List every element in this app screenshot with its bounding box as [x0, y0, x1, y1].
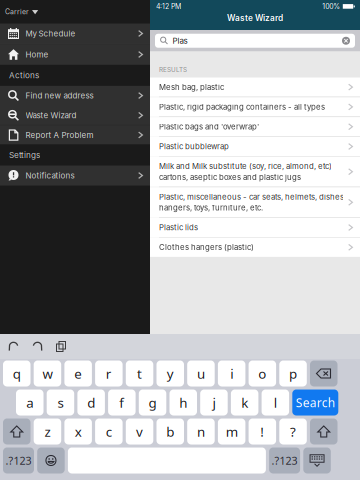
staticText: u: [197, 365, 205, 382]
button[interactable]: Shift: [310, 418, 337, 444]
button[interactable]: y: [156, 360, 184, 386]
staticText: x: [75, 423, 82, 440]
button[interactable]: i: [218, 360, 245, 386]
button[interactable]: m: [218, 418, 245, 444]
button[interactable]: r: [95, 360, 123, 386]
button[interactable]: Redo: [32, 341, 43, 352]
staticText: r: [106, 365, 112, 382]
staticText: Home: [25, 50, 48, 59]
button[interactable]: Notifications: [0, 165, 150, 185]
staticText: b: [166, 423, 174, 440]
staticText: Find new address: [25, 91, 93, 100]
staticText: z: [44, 423, 50, 440]
button[interactable]: u: [187, 360, 215, 386]
button[interactable]: Emoji: [37, 447, 65, 473]
button[interactable]: Waste Wizard: [0, 106, 150, 125]
staticText: Plastic, rigid packaging containers - al…: [159, 102, 325, 112]
button[interactable]: Plastic bubblewrap: [150, 137, 360, 156]
button[interactable]: n: [187, 418, 215, 444]
staticText: q: [13, 365, 21, 382]
button[interactable]: ?: [279, 418, 307, 444]
button[interactable]: Search: [292, 389, 338, 415]
button[interactable]: Mesh bag, plastic: [150, 77, 360, 97]
staticText: s: [57, 394, 63, 411]
button[interactable]: d: [77, 389, 105, 415]
staticText: ?: [290, 423, 296, 440]
button[interactable]: Paste: [56, 341, 67, 352]
staticText: g: [149, 394, 157, 411]
button[interactable]: v: [126, 418, 153, 444]
staticText: Plastic, miscellaneous - car seats, helm…: [159, 192, 346, 202]
button[interactable]: Milk and Milk substitute (soy, rice, alm…: [150, 157, 360, 187]
staticText: f: [119, 394, 124, 411]
button[interactable]: x: [64, 418, 92, 444]
button[interactable]: b: [156, 418, 184, 444]
button[interactable]: a: [16, 389, 43, 415]
button[interactable]: Report A Problem: [0, 125, 150, 144]
button[interactable]: p: [279, 360, 307, 386]
staticText: 4:12 PM: [156, 2, 181, 11]
button[interactable]: w: [34, 360, 61, 386]
staticText: Actions: [9, 70, 39, 80]
button[interactable]: Shift: [3, 418, 30, 444]
staticText: cartons, aseptic boxes and plastic jugs: [159, 172, 301, 182]
button[interactable]: j: [200, 389, 228, 415]
staticText: My Schedule: [25, 29, 75, 38]
staticText: Plas: [172, 36, 187, 46]
button[interactable]: g: [139, 389, 166, 415]
button[interactable]: f: [108, 389, 136, 415]
staticText: k: [241, 394, 248, 411]
button[interactable]: t: [126, 360, 153, 386]
button[interactable]: e: [64, 360, 92, 386]
staticText: 100%: [322, 2, 340, 11]
staticText: .?123: [272, 453, 298, 468]
button[interactable]: Find new address: [0, 86, 150, 105]
button[interactable]: Plastic bags and 'overwrap': [150, 117, 360, 136]
button[interactable]: q: [3, 360, 30, 386]
button[interactable]: c: [95, 418, 123, 444]
button[interactable]: h: [169, 389, 197, 415]
staticText: i: [230, 365, 233, 382]
staticText: RESULTS: [159, 66, 187, 73]
staticText: o: [258, 365, 266, 382]
button[interactable]: Clothes hangers (plastic): [150, 238, 360, 257]
button[interactable]: !: [249, 418, 276, 444]
button[interactable]: .?123: [3, 447, 34, 473]
staticText: w: [42, 365, 52, 382]
staticText: v: [136, 423, 143, 440]
staticText: h: [179, 394, 187, 411]
button[interactable]: .?123: [269, 447, 300, 473]
staticText: j: [212, 394, 215, 411]
staticText: d: [87, 394, 95, 411]
button[interactable]: My Schedule: [0, 23, 150, 43]
staticText: p: [289, 365, 297, 382]
staticText: e: [74, 365, 82, 382]
button[interactable]: [68, 447, 266, 473]
staticText: Notifications: [25, 171, 74, 180]
staticText: hangers, toys, furniture, etc.: [159, 203, 263, 212]
staticText: Waste Wizard: [227, 13, 283, 23]
button[interactable]: Hide keyboard: [303, 447, 331, 473]
button[interactable]: s: [47, 389, 74, 415]
staticText: t: [137, 365, 142, 382]
button[interactable]: Plastic, rigid packaging containers - al…: [150, 97, 360, 116]
staticText: n: [197, 423, 205, 440]
staticText: Milk and Milk substitute (soy, rice, alm…: [159, 162, 332, 171]
button[interactable]: z: [34, 418, 61, 444]
staticText: Carrier: [5, 8, 29, 16]
staticText: Report A Problem: [25, 130, 93, 140]
staticText: !: [260, 423, 264, 440]
staticText: Mesh bag, plastic: [159, 82, 224, 92]
button[interactable]: Undo: [8, 341, 19, 352]
button[interactable]: Home: [0, 44, 150, 65]
staticText: m: [226, 423, 238, 440]
button[interactable]: k: [231, 389, 258, 415]
button[interactable]: Plastic, miscellaneous - car seats, helm…: [150, 187, 360, 217]
button[interactable]: o: [249, 360, 276, 386]
button[interactable]: l: [262, 389, 289, 415]
staticText: Plastic lids: [159, 223, 198, 232]
button[interactable]: Backspace: [310, 360, 337, 386]
button[interactable]: Plastic lids: [150, 218, 360, 237]
staticText: a: [26, 394, 33, 411]
